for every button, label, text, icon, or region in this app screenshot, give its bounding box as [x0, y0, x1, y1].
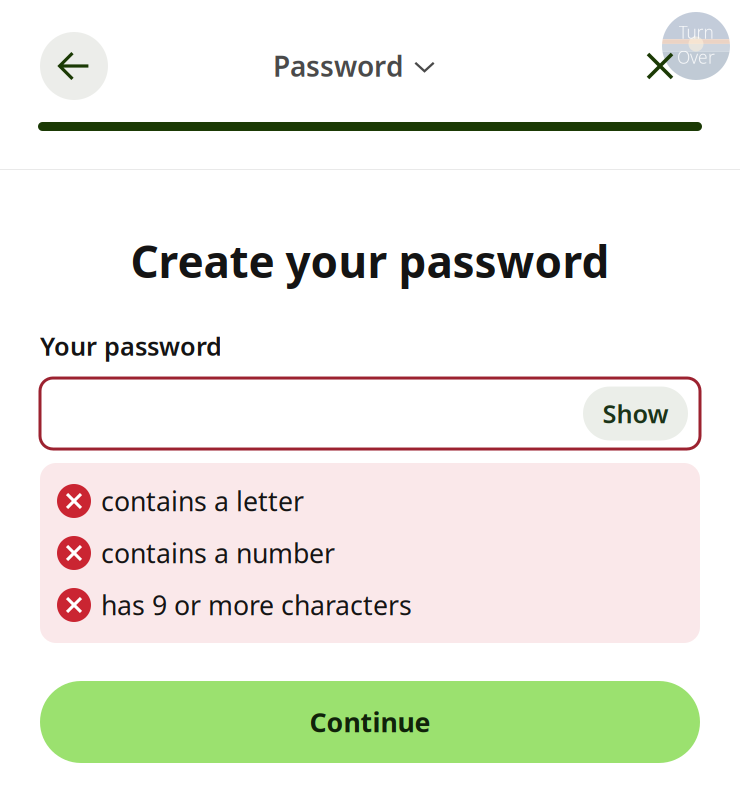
staticText: Password — [273, 47, 404, 85]
button[interactable]: Password — [261, 33, 447, 99]
button[interactable]: Your password — [40, 378, 700, 449]
staticText: Your password — [40, 329, 222, 363]
staticText: has 9 or more characters — [101, 587, 412, 623]
staticText: Show — [602, 397, 668, 430]
button[interactable]: Close — [632, 38, 688, 94]
staticText: contains a number — [101, 535, 335, 571]
staticText: Turn — [678, 21, 713, 44]
button[interactable]: Show — [583, 386, 688, 440]
staticText: Over — [677, 46, 715, 69]
staticText: Create your password — [130, 232, 609, 290]
staticText: Continue — [309, 704, 430, 740]
staticText: contains a letter — [101, 483, 304, 519]
button[interactable]: Continue — [40, 681, 700, 763]
button[interactable]: Back — [40, 32, 108, 100]
